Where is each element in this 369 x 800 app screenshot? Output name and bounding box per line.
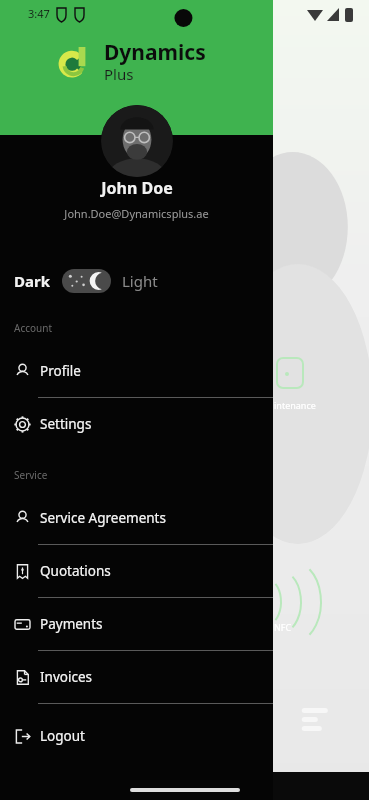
staticText: NFC bbox=[274, 621, 292, 633]
button[interactable]: Profile bbox=[0, 345, 273, 397]
staticText: Dark bbox=[14, 271, 50, 291]
staticText: Service Agreements bbox=[40, 509, 166, 527]
button[interactable]: Toggle dark and light theme bbox=[62, 269, 111, 293]
staticText: Quotations bbox=[40, 562, 111, 580]
staticText: Logout bbox=[40, 727, 85, 745]
staticText: Invoices bbox=[40, 668, 92, 686]
staticText: Service bbox=[14, 468, 48, 482]
button[interactable]: Payments bbox=[0, 598, 273, 650]
button[interactable]: Invoices bbox=[0, 651, 273, 703]
button[interactable]: Logout bbox=[0, 716, 273, 756]
staticText: John.Doe@Dynamicsplus.ae bbox=[64, 206, 209, 221]
button[interactable]: Quotations bbox=[0, 545, 273, 597]
staticText: Settings bbox=[40, 415, 92, 433]
button[interactable]: Settings bbox=[0, 398, 273, 450]
staticText: Profile bbox=[40, 362, 81, 380]
button[interactable]: Service Agreements bbox=[0, 492, 273, 544]
staticText: John Doe bbox=[101, 177, 173, 199]
staticText: 3:47 bbox=[28, 6, 50, 21]
staticText: Payments bbox=[40, 615, 103, 633]
staticText: Light bbox=[122, 271, 158, 291]
staticText: Account bbox=[14, 321, 53, 335]
staticText: Dynamics bbox=[104, 38, 206, 67]
staticText: Plus bbox=[104, 64, 134, 84]
staticText: intenance bbox=[274, 399, 316, 411]
